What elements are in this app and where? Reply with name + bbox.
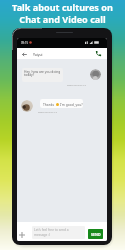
- staticText: Let's feel free to send a message :): [34, 228, 69, 237]
- staticText: 2020/12/4 01:13: [38, 110, 57, 113]
- staticText: 09:15: [21, 41, 29, 45]
- button[interactable]: Thanks: [40, 99, 83, 108]
- button[interactable]: Let's feel free to send a message :): [32, 226, 85, 239]
- staticText: 2020/12/4 01:12: [67, 83, 86, 86]
- button[interactable]: Hey, how are you doing today?: [22, 68, 63, 82]
- button[interactable]: Back: [20, 50, 28, 58]
- staticText: Talk about cultures on Chat and Video ca…: [0, 1, 125, 25]
- button[interactable]: Add attachment: [17, 230, 27, 240]
- button[interactable]: SEND: [88, 229, 103, 239]
- staticText: SEND: [91, 232, 101, 237]
- staticText: Hey, how are you doing today?: [24, 69, 61, 77]
- button[interactable]: Call: [94, 49, 102, 57]
- staticText: Yuiyui: [33, 52, 43, 56]
- staticText: Thanks: [43, 102, 55, 106]
- staticText: I'm good, you?: [60, 102, 83, 106]
